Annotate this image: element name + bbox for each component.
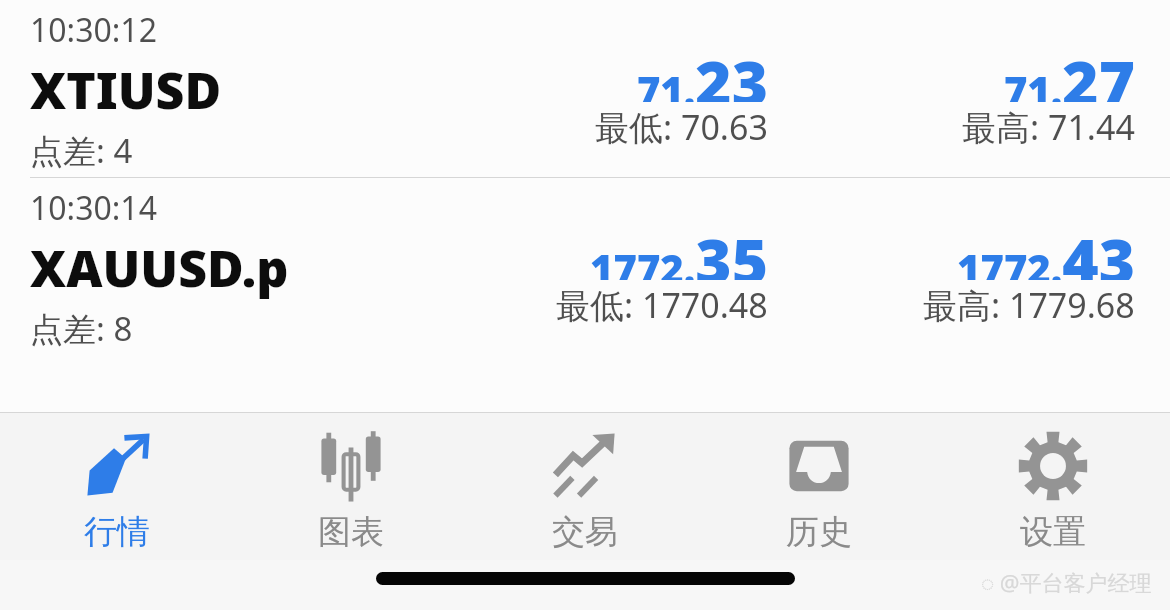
- button[interactable]: 10:30:14: [0, 178, 1170, 362]
- button[interactable]: Trade: [468, 413, 702, 553]
- staticText: ◌ @平台客户经理: [981, 567, 1152, 597]
- other: Quotes: [80, 429, 154, 503]
- staticText: 71.27: [1003, 40, 1135, 102]
- staticText: 历史: [786, 511, 852, 553]
- staticText: 1772.43: [957, 218, 1135, 280]
- staticText: XTIUSD: [30, 56, 222, 124]
- other: Settings: [1016, 429, 1090, 503]
- staticText: 1772.35: [590, 218, 768, 280]
- staticText: 最低: 70.63: [595, 104, 768, 150]
- staticText: 点差: 4: [30, 128, 133, 173]
- staticText: 行情: [84, 511, 150, 553]
- button[interactable]: Settings: [936, 413, 1170, 553]
- staticText: 图表: [318, 511, 384, 553]
- staticText: 点差: 8: [30, 306, 133, 351]
- button[interactable]: Quotes: [0, 413, 234, 553]
- other: Trade: [548, 429, 622, 503]
- button[interactable]: History: [702, 413, 936, 553]
- button[interactable]: Charts: [234, 413, 468, 553]
- staticText: 10:30:12: [30, 8, 157, 52]
- staticText: 71.23: [636, 40, 768, 102]
- staticText: 交易: [552, 511, 618, 553]
- staticText: 最高: 1779.68: [923, 282, 1135, 328]
- staticText: XAUUSD.p: [30, 234, 289, 302]
- other: Charts: [314, 429, 388, 503]
- staticText: 设置: [1020, 511, 1086, 553]
- staticText: 最低: 1770.48: [556, 282, 768, 328]
- staticText: 最高: 71.44: [962, 104, 1135, 150]
- other: History: [782, 429, 856, 503]
- staticText: 10:30:14: [30, 186, 157, 230]
- button[interactable]: 10:30:12: [0, 0, 1170, 177]
